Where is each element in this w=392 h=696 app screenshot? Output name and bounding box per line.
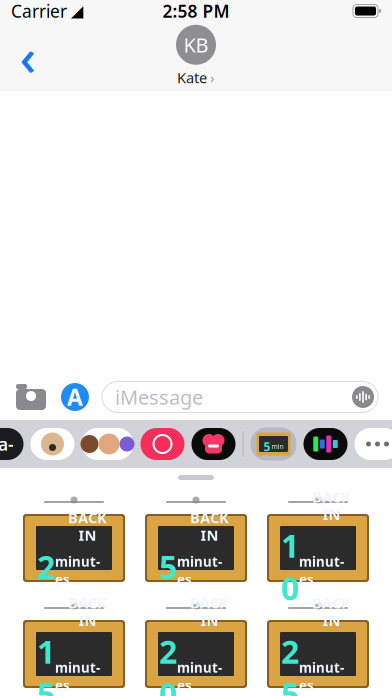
button[interactable]: Music stickers [303,428,347,460]
staticText: minutes [55,659,100,694]
staticText: 20 [159,630,177,696]
button[interactable]: BACK [135,590,257,690]
button[interactable]: BACK [257,590,379,690]
staticText: 25 [281,630,299,696]
button[interactable]: Images [140,428,184,460]
staticText: Pay [0,409,15,479]
staticText: BACK [68,593,107,612]
staticText: BACK [190,593,229,612]
button[interactable]: BACK [13,590,135,690]
button[interactable]: BACK [257,484,379,584]
button[interactable]: BACK [135,484,257,584]
button[interactable]: Memoji Stickers [81,428,133,460]
staticText: BACK [190,508,229,527]
staticText: minutes [299,553,344,588]
staticText: BACK [68,508,107,527]
button[interactable]: BACK [13,484,135,584]
staticText: 2 [37,545,55,588]
button[interactable]: Digital Touch [191,428,235,460]
staticText: A [67,382,83,412]
staticText: IN [200,610,218,630]
staticText: IN [322,610,340,630]
staticText: 5 [263,438,270,454]
staticText: IN [78,525,96,545]
button[interactable]: Memoji [30,428,74,460]
staticText: minutes [55,553,100,588]
staticText: 2:58 PM [162,0,229,22]
staticText: Kate [177,68,207,87]
button[interactable]: App Store [60,382,90,412]
staticText: min [271,442,283,451]
staticText: iMessage [115,384,203,410]
staticText: BACK [312,593,351,612]
staticText: KB [183,31,208,58]
button[interactable]: Back [6,30,50,82]
staticText: minutes [177,659,222,694]
staticText: minutes [299,659,344,694]
staticText: 10 [281,524,299,609]
staticText: BACK [312,487,351,506]
staticText: › [210,68,215,87]
staticText: minutes [177,553,222,588]
staticText: ‹ [19,22,36,90]
staticText: 15 [37,630,55,696]
staticText: 5 [159,545,177,588]
staticText: IN [200,525,218,545]
button[interactable]: Back In Minutes stickers [250,427,296,460]
staticText: IN [78,610,96,630]
button[interactable]: Apple Pay [0,428,23,460]
button[interactable]: iMessage [102,381,378,412]
button[interactable]: Camera [14,382,48,412]
staticText: IN [322,504,340,524]
button[interactable]: More apps [354,428,392,460]
staticText: Carrier [11,0,67,22]
button[interactable]: KB [166,25,226,87]
staticText: ◢ [71,2,83,20]
